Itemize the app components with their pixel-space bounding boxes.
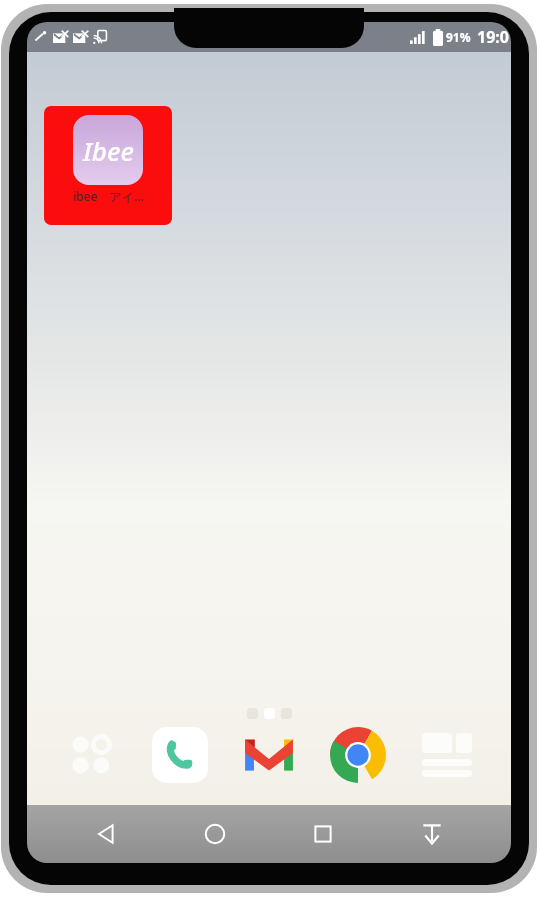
button[interactable]: Gmail <box>236 722 302 788</box>
button[interactable]: ibee app <box>53 115 163 216</box>
button[interactable]: Home <box>186 805 244 863</box>
staticText: 91% <box>446 29 471 45</box>
button[interactable]: Phone <box>147 722 213 788</box>
button[interactable]: Feed <box>414 722 480 788</box>
staticText: Ibee <box>83 133 134 168</box>
button[interactable]: All apps <box>58 722 124 788</box>
button[interactable]: Chrome <box>325 722 391 788</box>
staticText: 19:0 <box>477 26 509 48</box>
button[interactable]: Back <box>77 805 135 863</box>
staticText: ibee アイ… <box>73 188 144 204</box>
button[interactable]: Recents <box>294 805 352 863</box>
button[interactable]: Hide keyboard <box>403 805 461 863</box>
